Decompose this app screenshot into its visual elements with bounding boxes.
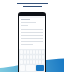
button[interactable]: Send: [36, 65, 44, 71]
